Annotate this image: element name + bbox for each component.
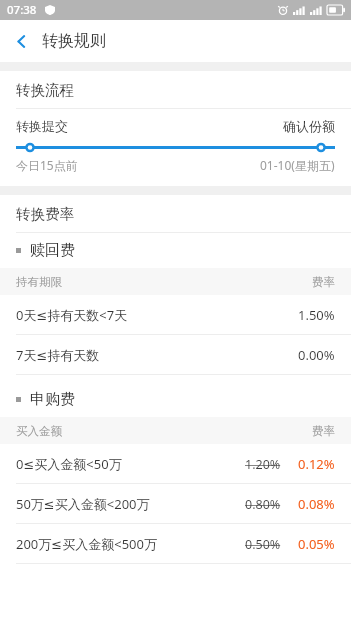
staticText: 0.05% bbox=[298, 535, 335, 553]
button[interactable]: 0≤买入金额<50万 bbox=[0, 444, 351, 484]
staticText: 买入金额 bbox=[16, 424, 62, 438]
staticText: 转换流程 bbox=[16, 81, 74, 99]
button[interactable]: 0天≤持有天数<7天 bbox=[0, 295, 351, 335]
staticText: 1.50% bbox=[298, 306, 335, 324]
button[interactable]: 7天≤持有天数 bbox=[0, 335, 351, 375]
staticText: 转换费率 bbox=[16, 205, 74, 223]
staticText: 0.00% bbox=[298, 346, 335, 364]
staticText: 0天≤持有天数<7天 bbox=[16, 306, 128, 324]
staticText: 07:38 bbox=[7, 2, 37, 18]
staticText: 费率 bbox=[312, 275, 335, 289]
button[interactable]: Back bbox=[0, 20, 42, 62]
staticText: 费率 bbox=[312, 424, 335, 438]
staticText: 7天≤持有天数 bbox=[16, 346, 100, 364]
staticText: 持有期限 bbox=[16, 275, 62, 289]
button[interactable]: 200万≤买入金额<500万 bbox=[0, 524, 351, 564]
staticText: 确认份额 bbox=[283, 118, 335, 134]
staticText: 0≤买入金额<50万 bbox=[16, 455, 122, 473]
staticText: 0.80% bbox=[245, 496, 281, 513]
staticText: 0.08% bbox=[298, 495, 335, 513]
staticText: 转换提交 bbox=[16, 118, 68, 134]
staticText: 1.20% bbox=[245, 456, 281, 473]
button[interactable]: 50万≤买入金额<200万 bbox=[0, 484, 351, 524]
staticText: 赎回费 bbox=[30, 241, 75, 260]
staticText: 200万≤买入金额<500万 bbox=[16, 535, 157, 553]
staticText: 0.50% bbox=[245, 536, 281, 553]
staticText: 今日15点前 bbox=[16, 157, 78, 173]
staticText: 01-10(星期五) bbox=[260, 157, 335, 173]
staticText: 0.12% bbox=[298, 455, 335, 473]
staticText: 转换规则 bbox=[42, 31, 106, 51]
staticText: 申购费 bbox=[30, 390, 75, 409]
staticText: 50万≤买入金额<200万 bbox=[16, 495, 150, 513]
